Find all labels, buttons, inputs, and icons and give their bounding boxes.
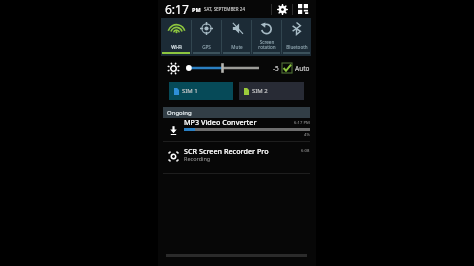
button[interactable]: Screen rotation: [252, 18, 281, 56]
staticText: SIM 1: [182, 87, 198, 95]
staticText: -5: [273, 64, 279, 73]
button[interactable]: Auto brightness: [282, 63, 292, 73]
button[interactable]: Bluetooth: [282, 18, 311, 56]
button[interactable]: SIM 2: [239, 82, 304, 100]
button[interactable]: [186, 62, 259, 74]
button[interactable]: Quick settings: [293, 0, 312, 18]
staticText: SIM 2: [252, 87, 268, 95]
button[interactable]: Brightness: [167, 62, 180, 75]
staticText: 4%: [304, 132, 310, 138]
staticText: MP3 Video Converter: [184, 117, 257, 127]
staticText: Auto: [295, 64, 310, 73]
staticText: Screen rotation: [258, 39, 276, 50]
button[interactable]: Settings: [272, 0, 292, 18]
staticText: 6:08: [301, 148, 310, 154]
button[interactable]: MP3 Video Converter: [163, 118, 310, 141]
button[interactable]: GPS: [192, 18, 221, 56]
staticText: Ongoing: [167, 109, 192, 117]
staticText: PM: [192, 6, 201, 13]
button[interactable]: Wi-Fi: [161, 18, 191, 56]
button[interactable]: SIM 1: [169, 82, 233, 100]
staticText: Mute: [231, 44, 243, 50]
staticText: 6:17: [165, 1, 189, 17]
staticText: 6:17 PM: [294, 120, 310, 126]
staticText: SAT, SEPTEMBER 24: [204, 6, 245, 12]
staticText: Wi-Fi: [171, 44, 182, 50]
staticText: SCR Screen Recorder Pro: [184, 146, 269, 156]
button[interactable]: Mute: [222, 18, 251, 56]
staticText: GPS: [202, 44, 211, 50]
button[interactable]: SCR Screen Recorder Pro: [163, 142, 310, 173]
staticText: Recording: [184, 155, 211, 162]
staticText: Bluetooth: [286, 44, 308, 50]
